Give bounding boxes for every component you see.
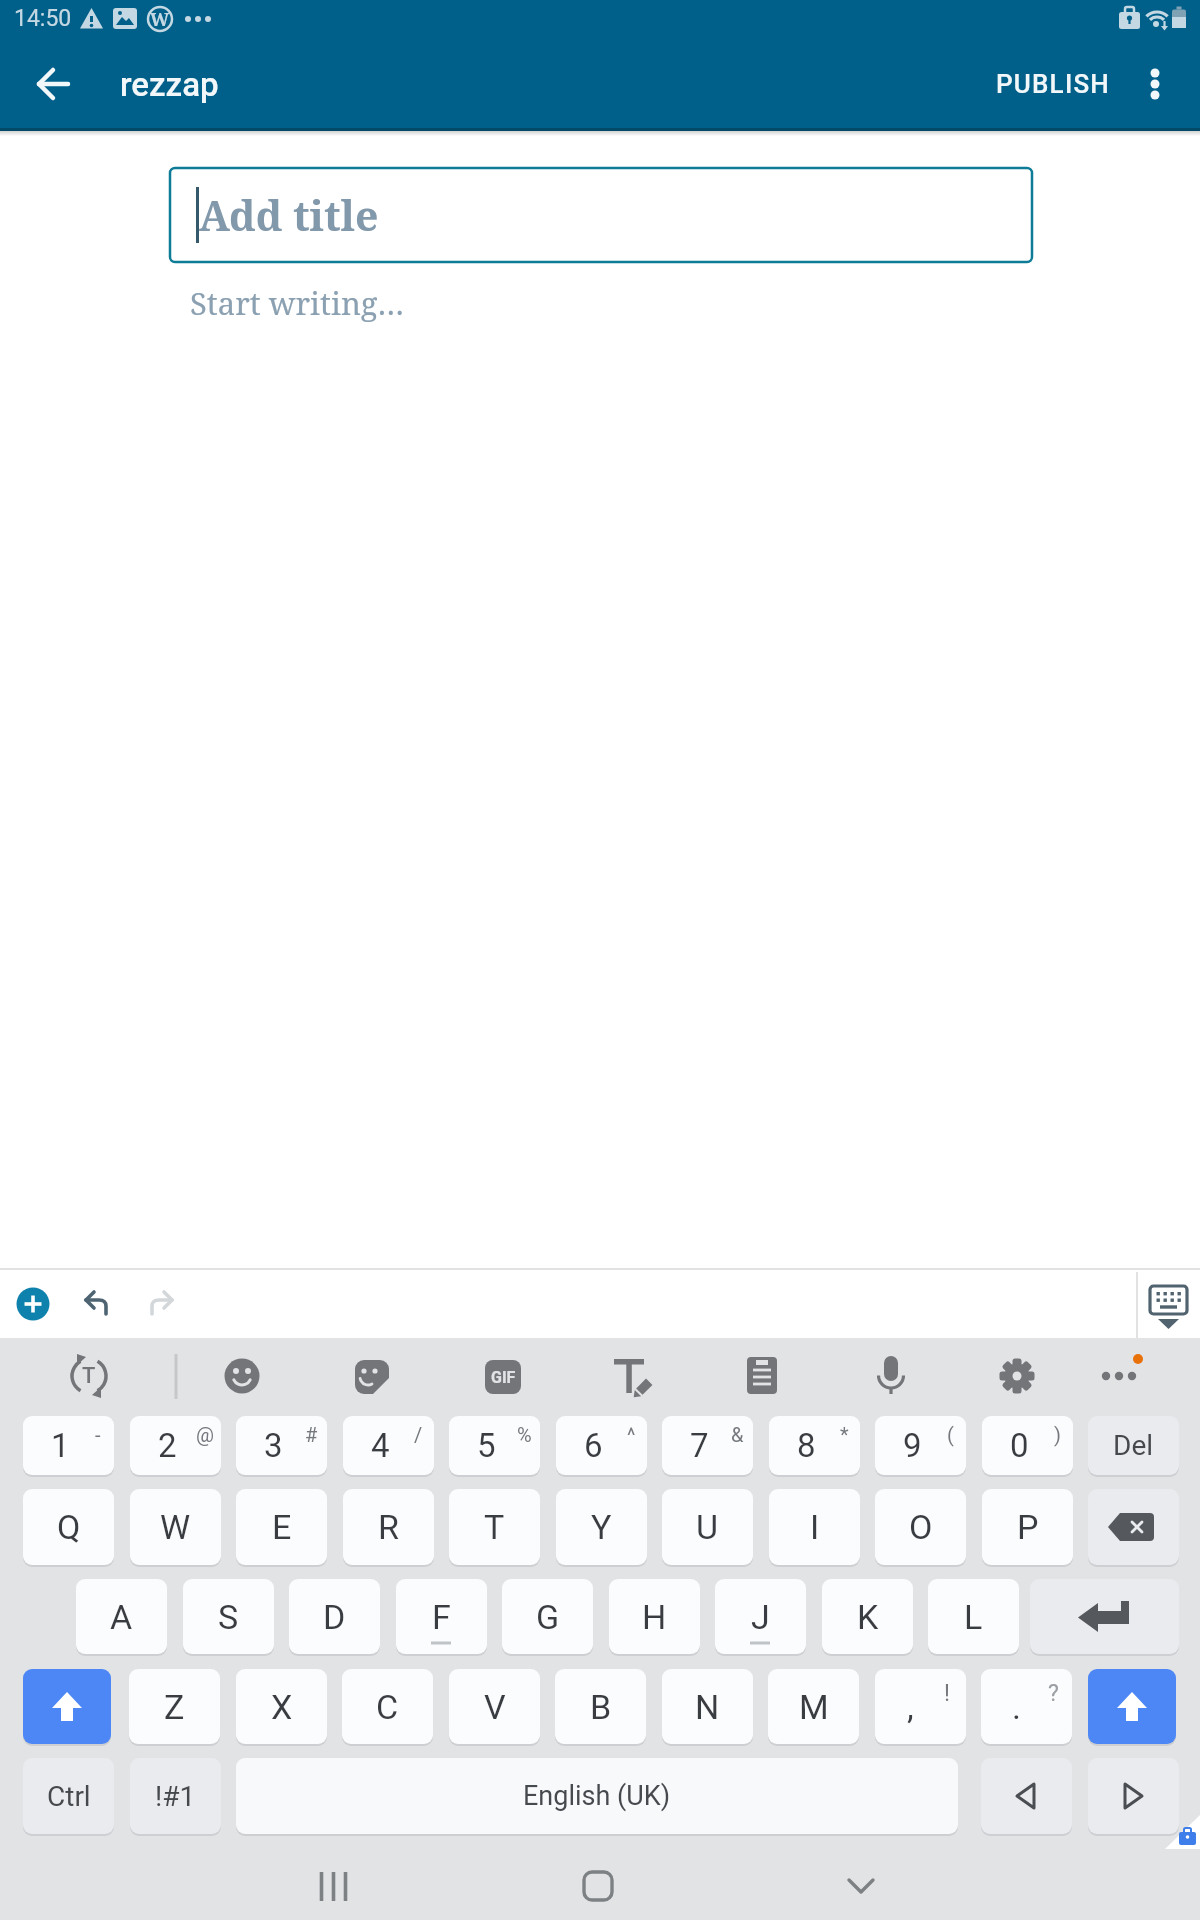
staticText: 6 (584, 1426, 603, 1465)
staticText: F (432, 1597, 451, 1637)
staticText: & (731, 1423, 744, 1446)
staticText: ( (947, 1423, 954, 1446)
staticText: P (1017, 1507, 1039, 1547)
staticText: * (840, 1423, 849, 1446)
staticText: 0 (1010, 1426, 1029, 1465)
staticText: / (414, 1423, 423, 1446)
staticText: B (590, 1687, 612, 1727)
staticText: % (517, 1423, 532, 1446)
staticText: L (964, 1597, 983, 1637)
staticText: D (323, 1597, 346, 1637)
staticText: X (271, 1687, 293, 1727)
staticText: E (272, 1507, 292, 1547)
staticText: # (305, 1423, 318, 1446)
staticText: PUBLISH (996, 69, 1111, 99)
staticText: W (160, 1507, 191, 1547)
staticText: I (810, 1507, 820, 1547)
staticText: GIF (491, 1368, 516, 1387)
staticText: 14:50 (14, 5, 72, 32)
staticText: ! (944, 1680, 950, 1707)
staticText: Q (57, 1507, 81, 1547)
staticText: English (UK) (523, 1780, 671, 1812)
staticText: Ctrl (47, 1780, 91, 1813)
staticText: Z (164, 1687, 185, 1727)
staticText: V (484, 1687, 506, 1727)
staticText: U (696, 1507, 719, 1547)
staticText: S (218, 1597, 239, 1637)
staticText: T (484, 1507, 505, 1547)
staticText: - (95, 1423, 101, 1446)
staticText: J (751, 1597, 770, 1637)
staticText: ^ (627, 1423, 636, 1446)
staticText: 9 (903, 1426, 922, 1465)
staticText: N (695, 1687, 720, 1727)
staticText: C (376, 1687, 399, 1727)
staticText: H (642, 1597, 667, 1637)
staticText: 1 (51, 1426, 70, 1465)
staticText: ? (1048, 1680, 1059, 1707)
staticText: 4 (371, 1426, 390, 1465)
staticText: M (799, 1687, 829, 1727)
staticText: R (378, 1507, 399, 1547)
staticText: Y (591, 1507, 612, 1547)
staticText: 8 (797, 1426, 816, 1465)
staticText: . (1012, 1687, 1021, 1727)
staticText: 5 (477, 1426, 496, 1465)
staticText: 3 (264, 1426, 283, 1465)
staticText: Start writing… (190, 282, 405, 324)
staticText: W (150, 7, 170, 32)
staticText: @ (196, 1423, 214, 1446)
staticText: !#1 (155, 1780, 196, 1813)
staticText: K (857, 1597, 879, 1637)
staticText: , (907, 1687, 914, 1727)
staticText: Del (1113, 1429, 1154, 1462)
staticText: G (536, 1597, 560, 1637)
staticText: T (82, 1363, 96, 1389)
staticText: A (110, 1597, 133, 1637)
staticText: 7 (690, 1426, 709, 1465)
staticText: O (909, 1507, 933, 1547)
staticText: Add title (199, 187, 379, 243)
staticText: ) (1054, 1423, 1061, 1446)
staticText: 2 (158, 1426, 177, 1465)
staticText: rezzap (120, 65, 219, 104)
